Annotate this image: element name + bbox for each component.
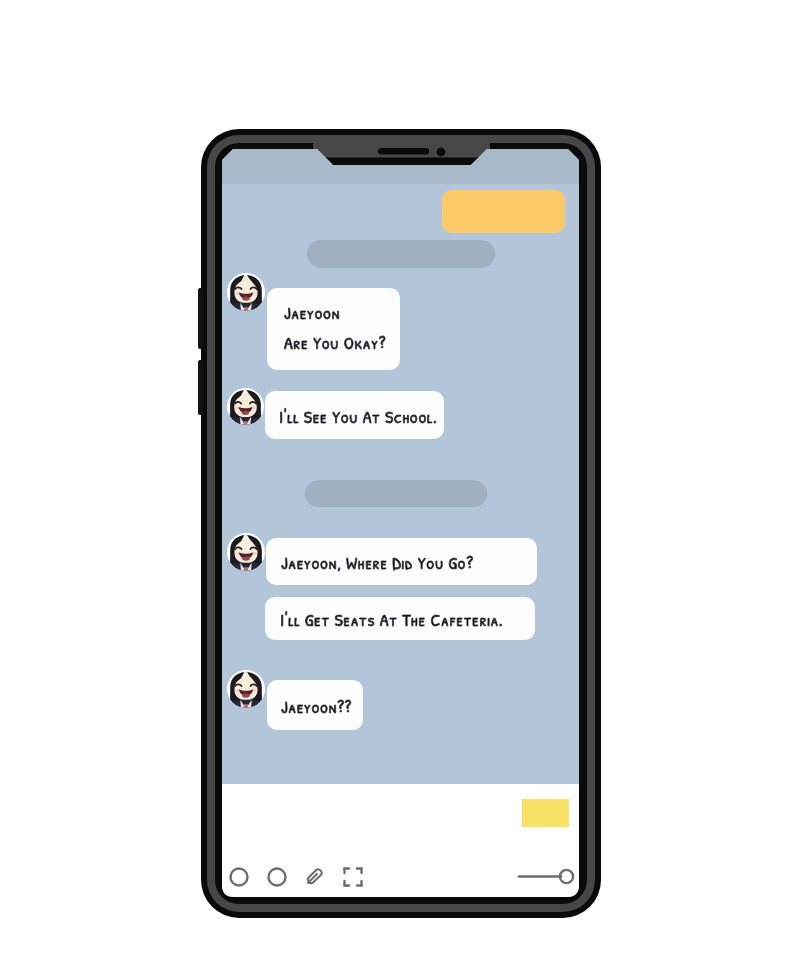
staticText: Are You Okay? [284, 330, 386, 354]
button[interactable]: Jaeyoon [267, 288, 400, 370]
staticText: Jaeyoon [284, 300, 341, 324]
staticText: I'll See You At School. [279, 404, 438, 428]
button[interactable]: Sticker [264, 864, 290, 890]
button[interactable]: Attach file [301, 864, 327, 890]
button[interactable]: Profile photo [227, 388, 264, 425]
button[interactable]: I'll See You At School. [265, 391, 444, 439]
button[interactable]: Send [512, 862, 574, 892]
button[interactable]: Sent message [442, 190, 565, 233]
button[interactable]: Jaeyoon, Where Did You Go? [266, 538, 537, 585]
staticText: Jaeyoon, Where Did You Go? [281, 550, 474, 574]
button[interactable]: Date divider [307, 240, 495, 268]
staticText: Jaeyoon?? [281, 694, 352, 718]
button[interactable]: Date divider [305, 480, 487, 507]
button[interactable]: Profile photo [227, 670, 265, 708]
staticText: I'll Get Seats At The Cafeteria. [280, 607, 504, 631]
button[interactable]: I'll Get Seats At The Cafeteria. [265, 597, 535, 640]
button[interactable]: Profile photo [227, 273, 265, 311]
staticText: Jaeyoon?? [281, 694, 352, 718]
button[interactable]: Camera [226, 864, 252, 890]
staticText: I'll See You At School. [279, 404, 438, 428]
button[interactable]: Expand [340, 864, 366, 890]
button[interactable]: Profile photo [227, 533, 265, 571]
staticText: Jaeyoon, Where Did You Go? [281, 550, 474, 574]
button[interactable]: Jaeyoon?? [267, 680, 363, 730]
staticText: Are You Okay? [284, 330, 386, 354]
staticText: I'll Get Seats At The Cafeteria. [280, 607, 504, 631]
staticText: Jaeyoon [284, 300, 341, 324]
